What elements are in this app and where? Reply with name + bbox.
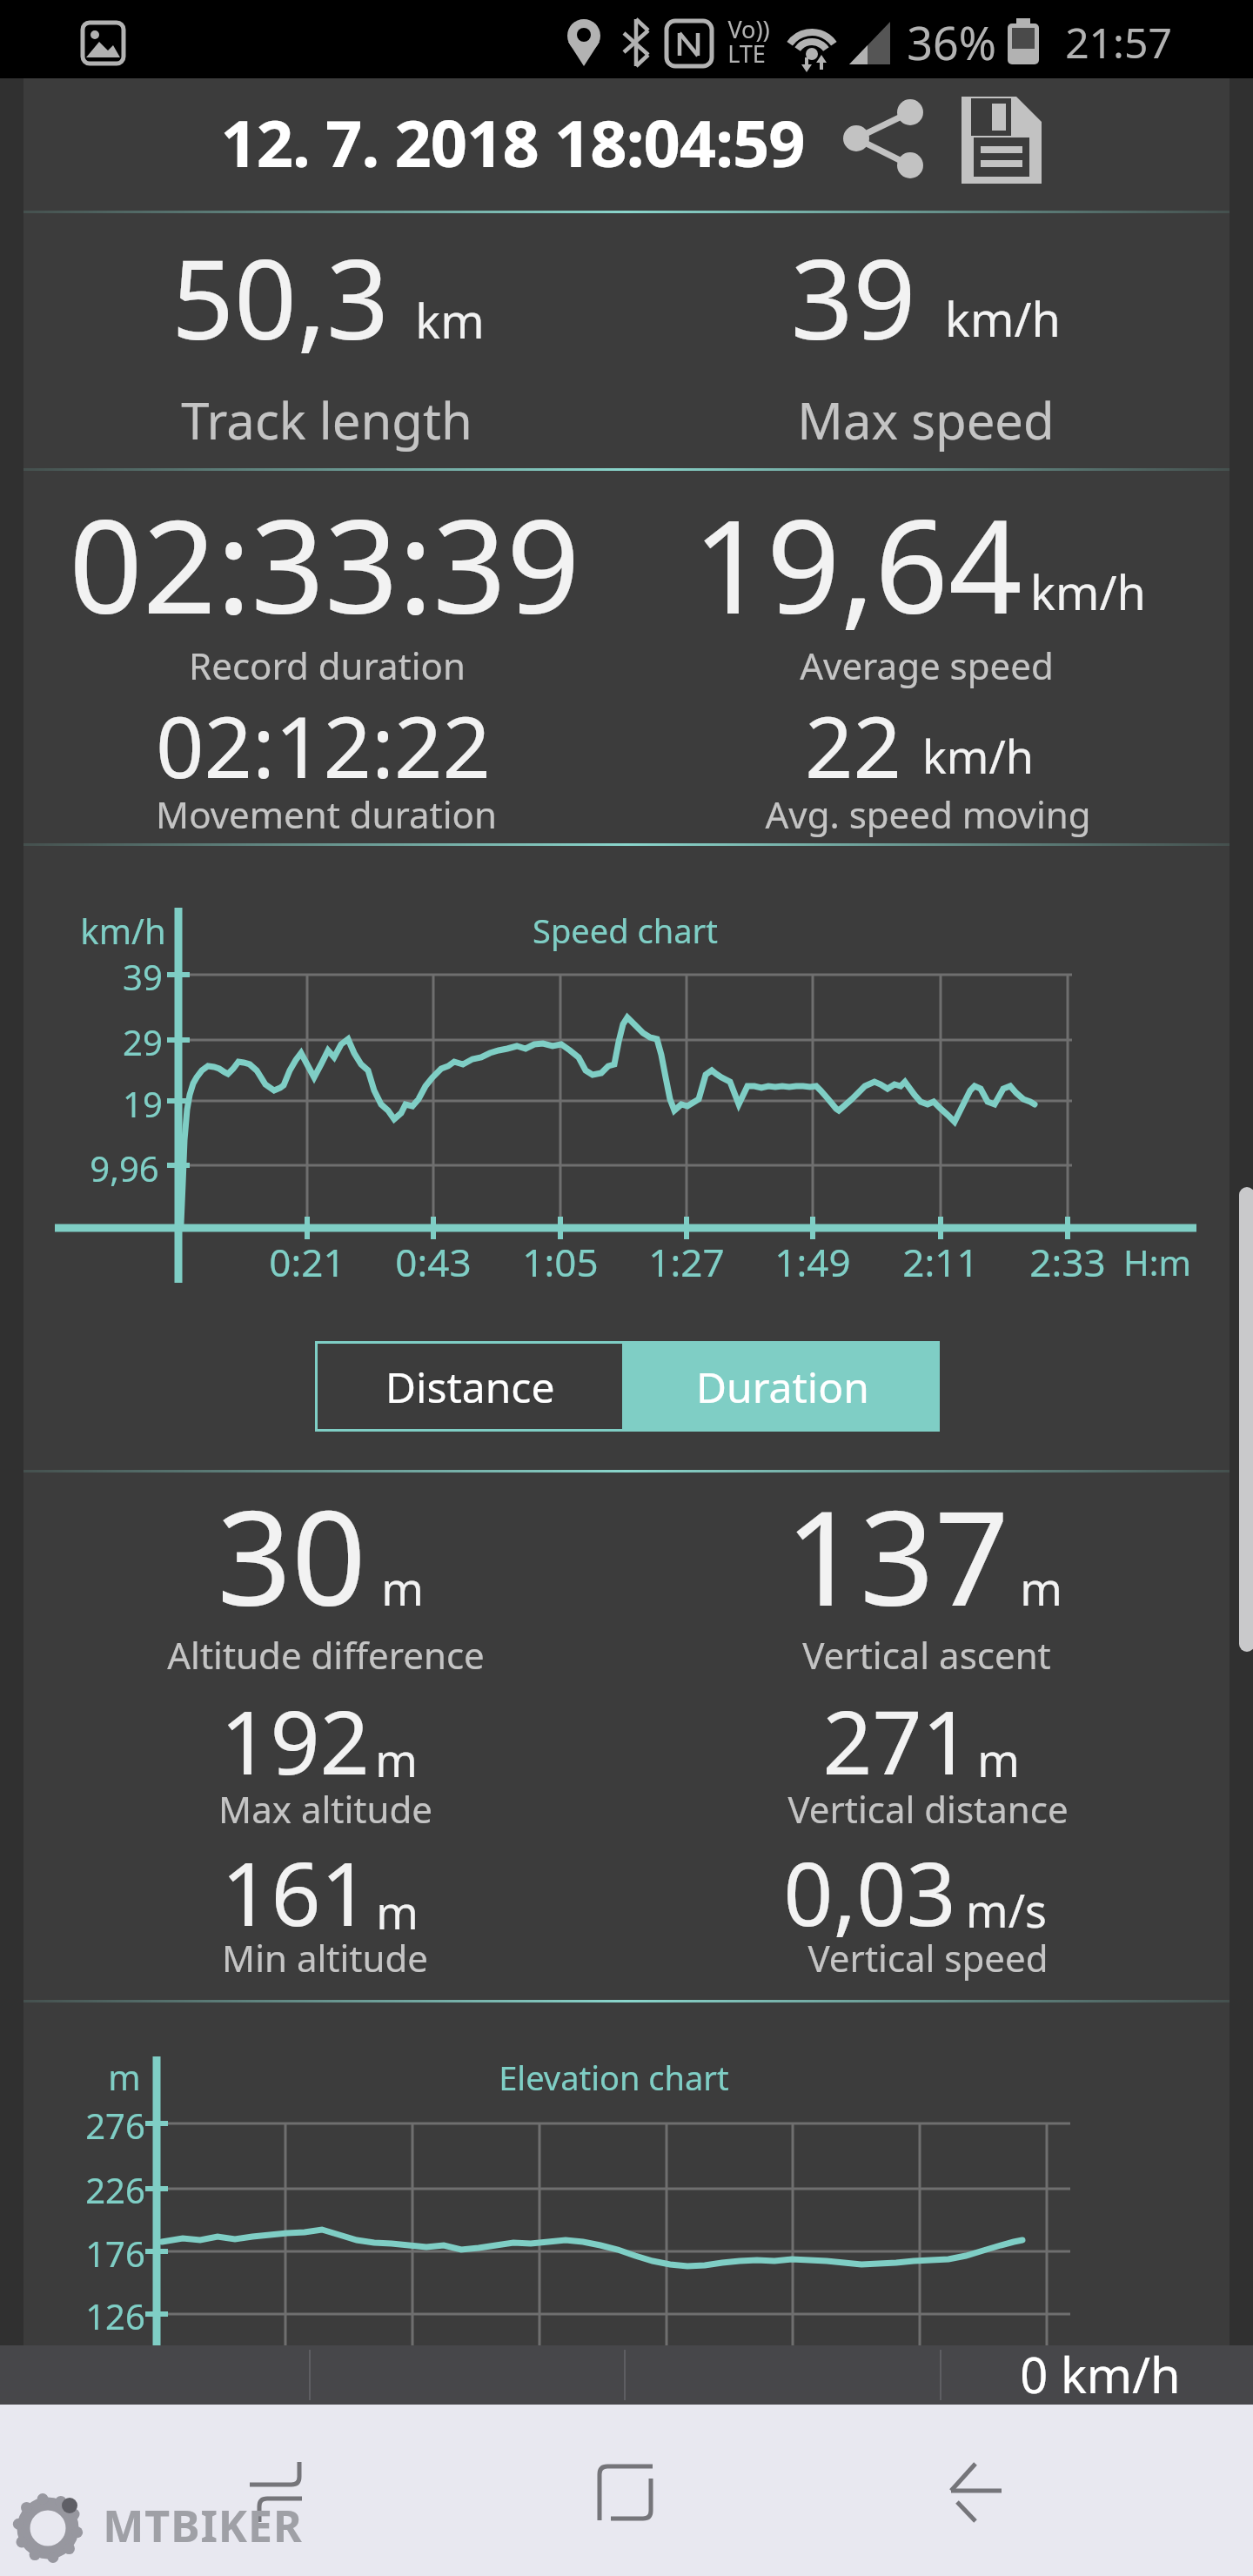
button[interactable] [948, 87, 1053, 191]
staticText: m [376, 1881, 419, 1942]
staticText: 30 [217, 1466, 366, 1644]
staticText: 2:11 [902, 1236, 979, 1288]
staticText: 0,03 [783, 1833, 956, 1951]
staticText: m [977, 1728, 1020, 1790]
staticText: km/h [1030, 560, 1146, 624]
staticText: km/h [945, 286, 1061, 351]
staticText: Altitude difference [167, 1630, 485, 1680]
staticText: Vo)) [727, 13, 770, 45]
staticText: m [1020, 1557, 1062, 1619]
staticText: 192 [220, 1681, 370, 1800]
button[interactable] [827, 96, 922, 191]
staticText: 1:27 [648, 1236, 725, 1288]
button[interactable]: Duration [625, 1341, 940, 1432]
staticText: 39 [790, 222, 916, 372]
staticText: 137 [785, 1466, 1009, 1644]
staticText: Distance [385, 1358, 555, 1415]
staticText: 1:49 [774, 1236, 851, 1288]
button[interactable] [914, 2432, 1035, 2554]
staticText: 22 [805, 688, 901, 802]
staticText: Duration [696, 1358, 869, 1415]
staticText: 0:43 [395, 1236, 472, 1288]
staticText: Max speed [797, 386, 1055, 454]
staticText: m [375, 1728, 418, 1790]
staticText: 161 [221, 1833, 371, 1951]
staticText: Min altitude [222, 1933, 428, 1982]
staticText: 19 [123, 1080, 163, 1127]
staticText: 12. 7. 2018 18:04:59 [220, 98, 805, 186]
staticText: 1:05 [522, 1236, 599, 1288]
staticText: 0:21 [269, 1236, 345, 1288]
staticText: 271 [822, 1681, 972, 1800]
staticText: 126 [85, 2292, 145, 2339]
staticText: 176 [85, 2230, 145, 2277]
staticText: Vertical distance [787, 1784, 1069, 1834]
staticText: 226 [85, 2166, 145, 2213]
button[interactable] [218, 2432, 339, 2554]
staticText: 19,64 [693, 476, 1022, 652]
staticText: 29 [123, 1018, 163, 1065]
staticText: 2:33 [1029, 1236, 1106, 1288]
staticText: Vertical speed [807, 1933, 1049, 1982]
staticText: km/h [922, 725, 1034, 787]
staticText: LTE [727, 37, 766, 70]
staticText: H:m [1123, 1238, 1191, 1285]
staticText: km/h [80, 907, 166, 954]
staticText: Record duration [189, 641, 466, 690]
staticText: 276 [85, 2102, 145, 2149]
staticText: Speed chart [533, 908, 718, 953]
staticText: Avg. speed moving [765, 789, 1091, 839]
button[interactable]: Distance [315, 1341, 625, 1432]
staticText: 02:12:22 [156, 688, 491, 802]
button[interactable] [566, 2432, 687, 2554]
staticText: 36% [907, 11, 996, 73]
staticText: 02:33:39 [69, 476, 580, 652]
staticText: 0 km/h [1020, 2341, 1181, 2407]
staticText: Track length [181, 386, 472, 454]
staticText: Max altitude [218, 1784, 432, 1834]
staticText: Elevation chart [499, 2055, 729, 2100]
staticText: m/s [966, 1879, 1047, 1941]
staticText: 21:57 [1065, 14, 1172, 70]
staticText: m [108, 2053, 141, 2100]
staticText: Average speed [800, 641, 1054, 690]
staticText: km [415, 288, 485, 352]
staticText: 9,96 [90, 1144, 159, 1191]
staticText: m [381, 1557, 424, 1619]
staticText: 39 [123, 953, 163, 1000]
staticText: MTBIKER [103, 2496, 303, 2555]
staticText: Vertical ascent [802, 1630, 1051, 1680]
staticText: Movement duration [156, 789, 497, 839]
staticText: 50,3 [171, 222, 389, 372]
